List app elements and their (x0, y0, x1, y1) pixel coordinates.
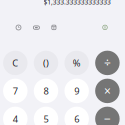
button[interactable]: ÷ (95, 51, 120, 75)
button[interactable]: History (13, 22, 24, 33)
button[interactable]: × (95, 79, 120, 103)
button[interactable]: C (3, 51, 28, 75)
staticText: ÷ (104, 55, 111, 71)
staticText: C (12, 57, 18, 69)
staticText: 9 (74, 85, 79, 97)
button[interactable]: Basic calculator (31, 22, 42, 33)
button[interactable]: 4 (3, 107, 28, 125)
staticText: 5 (43, 113, 48, 125)
staticText: 6 (74, 113, 79, 125)
staticText: () (43, 57, 49, 69)
button[interactable]: − (95, 107, 120, 125)
button[interactable]: 6 (64, 107, 89, 125)
button[interactable]: 9 (64, 79, 89, 103)
button[interactable]: 5 (34, 107, 58, 125)
button[interactable]: Convert currency (99, 22, 110, 33)
staticText: 4 (13, 113, 18, 125)
staticText: $1,333.333333333333 (43, 0, 111, 6)
button[interactable]: Scientific calculator (48, 22, 59, 33)
staticText: × (104, 83, 111, 99)
button[interactable]: 7 (3, 79, 28, 103)
button[interactable]: % (64, 51, 89, 75)
button[interactable]: 8 (34, 79, 58, 103)
staticText: 7 (13, 85, 18, 97)
staticText: 8 (43, 85, 48, 97)
staticText: − (104, 111, 111, 125)
button[interactable]: () (34, 51, 58, 75)
staticText: % (73, 57, 81, 69)
